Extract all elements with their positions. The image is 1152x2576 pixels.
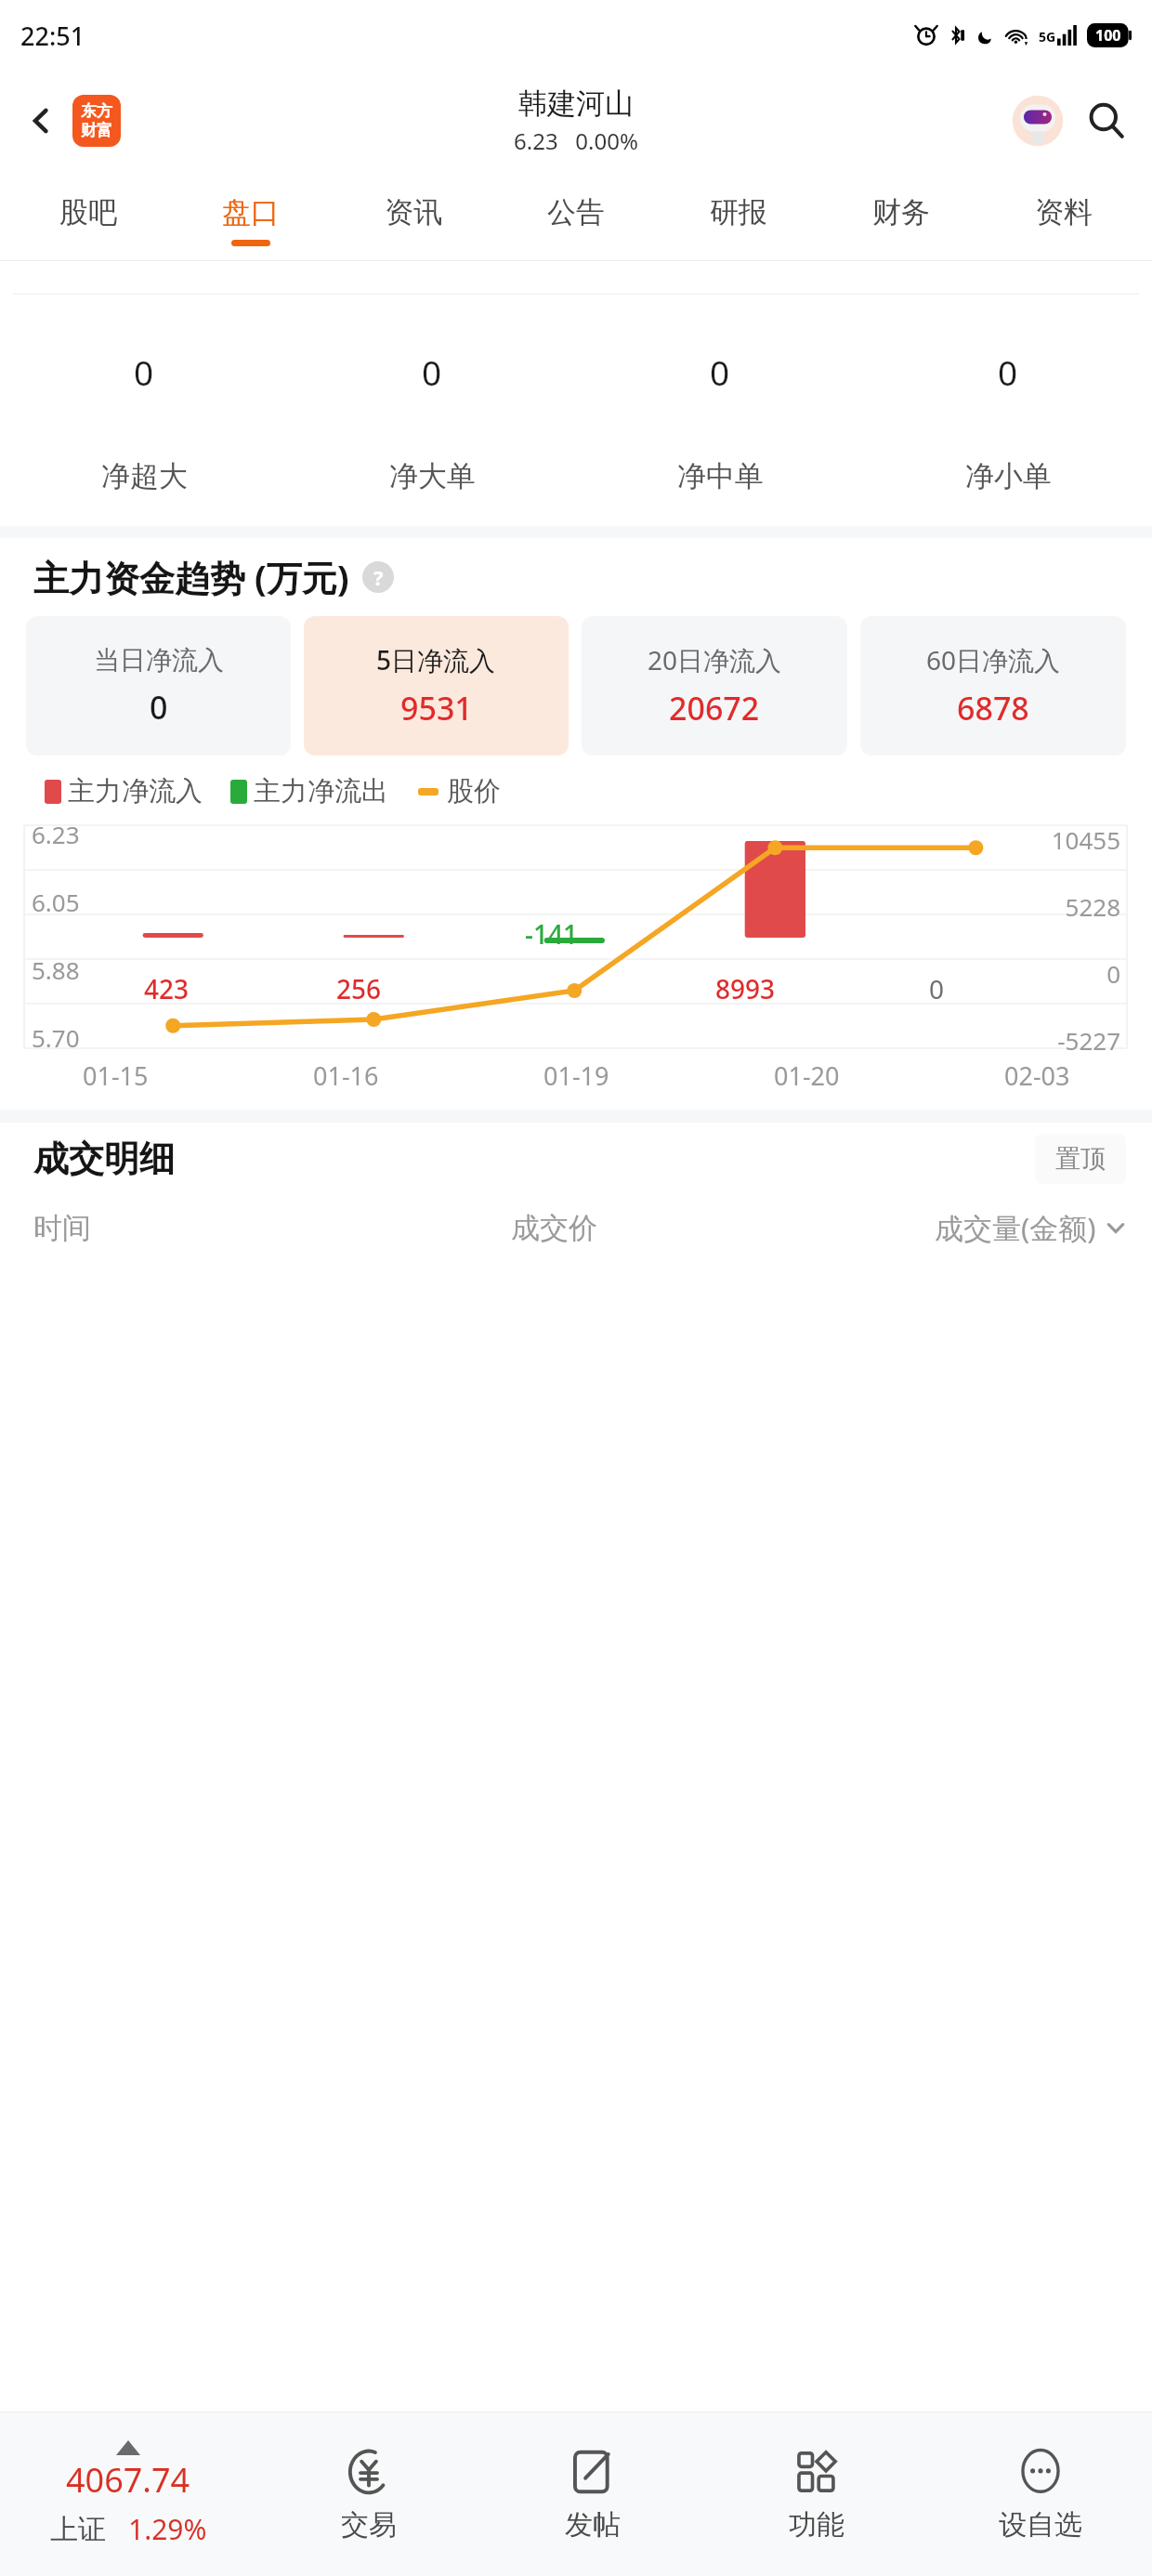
staticText: 股吧 [59,194,117,230]
staticText: -5227 [0,1024,1120,1057]
button[interactable]: 交易 [256,2412,480,2576]
staticText: 6.23 [32,818,80,850]
staticText: 资讯 [385,194,442,230]
staticText: 01-15 [83,1058,149,1093]
staticText: 净超大 [101,458,188,494]
staticText: 22:51 [20,19,85,53]
staticText: 置顶 [1055,1143,1106,1175]
button[interactable]: 财务 [819,170,982,261]
staticText: 财务 [872,194,930,230]
staticText: 5日净流入 [376,642,496,677]
staticText: 01-16 [313,1058,379,1093]
button[interactable]: Search [1078,92,1135,150]
staticText: 设自选 [999,2507,1082,2543]
staticText: 0 [134,348,154,395]
staticText: 发帖 [565,2507,621,2543]
staticText: 成交明细 [33,1137,175,1181]
staticText: 60日净流入 [926,642,1061,677]
staticText: 0 [150,686,168,729]
button[interactable]: Assistant [1009,92,1067,150]
staticText: 韩建河山 [518,85,634,122]
button[interactable]: 发帖 [480,2412,704,2576]
button[interactable]: Back [13,93,69,149]
staticText: 5.70 [32,1021,80,1054]
staticText: 东方 [81,101,112,121]
staticText: 423 [144,971,190,1006]
staticText: 02-03 [1004,1058,1070,1093]
button[interactable]: 当日净流入 [26,616,291,756]
staticText: 8993 [715,971,776,1006]
staticText: 0 [710,348,730,395]
staticText: 100 [1095,25,1121,46]
button[interactable]: 资料 [982,170,1145,261]
staticText: 成交量(金额) [935,1208,1096,1247]
staticText: 盘口 [222,194,280,230]
staticText: 256 [336,971,382,1006]
staticText: 6.05 [32,886,80,918]
staticText: ? [373,563,384,591]
staticText: 0 [929,971,945,1006]
staticText: 6.23 0.00% [514,125,638,156]
staticText: 0 [0,957,1120,990]
staticText: 上证 [50,2512,106,2547]
staticText: 5G [1039,28,1056,46]
staticText: 10455 [0,823,1120,856]
button[interactable]: 置顶 [1035,1134,1126,1184]
staticText: 时间 [33,1210,381,1246]
staticText: 成交价 [381,1210,727,1246]
button[interactable]: 20日净流入 [582,616,847,756]
staticText: 9531 [400,687,473,729]
staticText: 20672 [669,687,760,729]
staticText: 资料 [1035,194,1093,230]
staticText: 01-19 [543,1058,609,1093]
staticText: 净小单 [965,458,1052,494]
button[interactable]: 4067.74 [0,2412,256,2576]
button[interactable]: East Money [72,95,121,147]
button[interactable]: 研报 [657,170,819,261]
staticText: 6878 [957,687,1029,729]
staticText: 主力净流出 [254,774,388,808]
button[interactable]: 盘口 [169,170,332,261]
staticText: 0 [998,348,1018,395]
staticText: 20日净流入 [648,642,782,677]
staticText: 0 [422,348,442,395]
button[interactable]: 设自选 [928,2412,1152,2576]
staticText: 5228 [0,890,1120,923]
staticText: 股价 [447,774,501,808]
staticText: 01-20 [774,1058,840,1093]
staticText: 4067.74 [66,2457,190,2503]
button[interactable]: 资讯 [332,170,494,261]
button[interactable]: 股吧 [7,170,169,261]
staticText: 交易 [341,2507,397,2543]
staticText: 研报 [710,194,767,230]
staticText: 1.29% [128,2510,207,2548]
staticText: -141 [525,916,579,952]
staticText: 公告 [547,194,605,230]
staticText: 5.88 [32,953,80,986]
staticText: 功能 [789,2507,844,2543]
staticText: 财富 [81,121,112,140]
button[interactable]: 功能 [704,2412,928,2576]
button[interactable]: 60日净流入 [860,616,1126,756]
staticText: 主力资金趋势 (万元) [33,553,349,601]
staticText: 净大单 [389,458,476,494]
button[interactable]: Help [362,561,394,593]
button[interactable]: 公告 [494,170,657,261]
staticText: 当日净流入 [94,644,224,677]
staticText: 主力净流入 [68,774,203,808]
staticText: 净中单 [677,458,764,494]
button[interactable]: 5日净流入 [304,616,569,756]
